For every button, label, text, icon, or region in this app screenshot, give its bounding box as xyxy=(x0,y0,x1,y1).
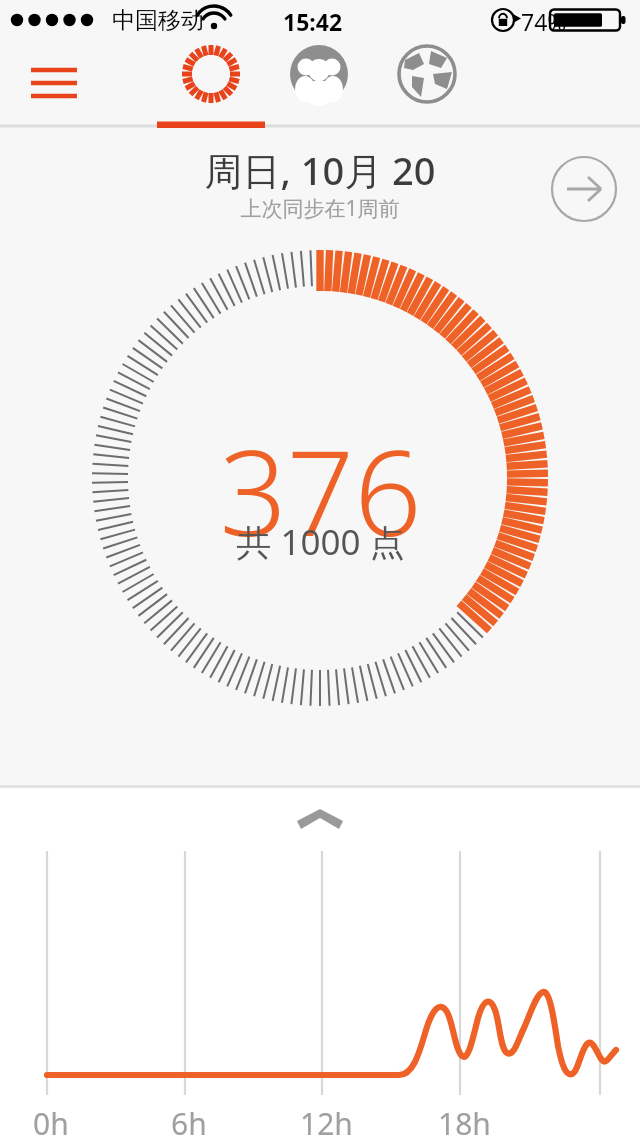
button[interactable]: World xyxy=(373,43,481,128)
button[interactable]: Next day xyxy=(551,156,617,222)
staticText: 中国移动 xyxy=(112,6,204,35)
button[interactable]: Menu xyxy=(10,43,98,128)
button[interactable]: Friends xyxy=(265,43,373,128)
staticText: 上次同步在1周前 xyxy=(240,194,400,223)
staticText: 6h xyxy=(171,1103,207,1136)
staticText: 18h xyxy=(438,1103,491,1136)
button[interactable]: Activity xyxy=(157,43,265,128)
staticText: 376 xyxy=(219,410,422,571)
staticText: 0h xyxy=(33,1103,69,1136)
staticText: 12h xyxy=(300,1103,353,1136)
staticText: 周日, 10月 20 xyxy=(204,144,436,196)
staticText: 共 1000 点 xyxy=(236,518,405,566)
staticText: 74% xyxy=(521,6,567,37)
staticText: 15:42 xyxy=(283,6,343,37)
